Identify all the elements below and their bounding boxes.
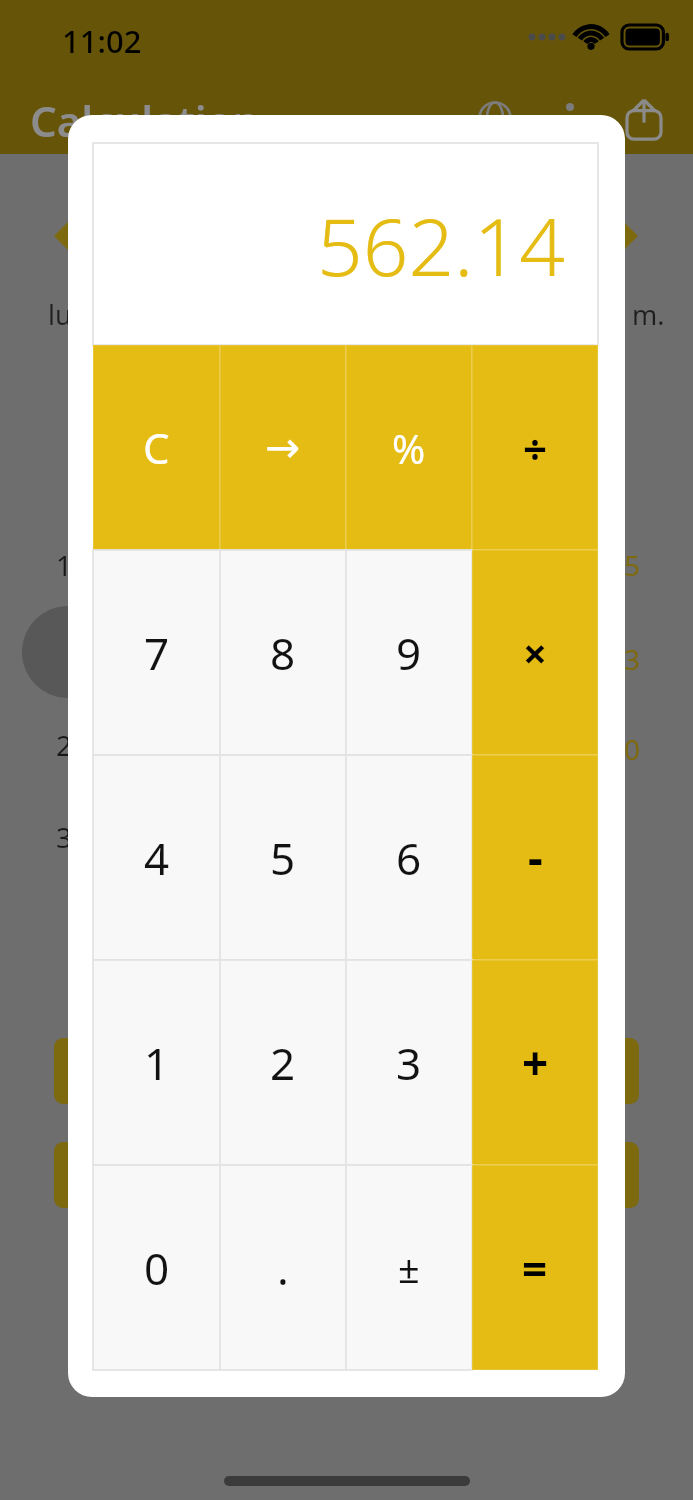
button[interactable]: 8 [220, 550, 346, 755]
button[interactable]: 3 [346, 960, 472, 1165]
button[interactable]: Plus [472, 960, 598, 1165]
staticText: 0 [624, 730, 641, 768]
staticText: 0 [144, 1238, 170, 1298]
button[interactable]: Multiply [472, 550, 598, 755]
staticText: 11:02 [62, 20, 142, 62]
button[interactable]: Percent [346, 345, 472, 550]
staticText: Calculation [30, 92, 260, 149]
button[interactable]: Share [614, 88, 674, 148]
button[interactable]: 2 [220, 960, 346, 1165]
staticText: 2 [270, 1033, 296, 1093]
staticText: % [392, 421, 426, 475]
staticText: 1 [144, 1033, 170, 1093]
button[interactable]: Info [546, 94, 594, 142]
staticText: 1 [56, 546, 73, 584]
staticText: m. [632, 296, 665, 333]
staticText: . [277, 1238, 289, 1298]
staticText: 3 [396, 1033, 422, 1093]
button[interactable]: 5 [220, 755, 346, 960]
button[interactable]: 4 [93, 755, 220, 960]
staticText: 3 [56, 818, 73, 856]
staticText: 7 [144, 623, 170, 683]
staticText: + [522, 1031, 549, 1094]
staticText: ÷ [523, 419, 548, 476]
staticText: 562.14 [93, 190, 565, 299]
button[interactable]: Minus [472, 755, 598, 960]
button[interactable]: 0 [93, 1165, 220, 1370]
staticText: 9 [396, 623, 422, 683]
staticText: 6 [396, 828, 422, 888]
button[interactable]: 1 [93, 960, 220, 1165]
staticText: lu [48, 296, 72, 333]
button[interactable]: Equals [472, 1165, 598, 1370]
staticText: 4 [144, 828, 170, 888]
staticText: 2 [56, 726, 73, 764]
button[interactable]: Backspace [220, 345, 346, 550]
staticText: ± [398, 1242, 420, 1294]
staticText: 3 [624, 640, 641, 678]
button[interactable]: 6 [346, 755, 472, 960]
staticText: 8 [270, 623, 296, 683]
button[interactable]: Toggle sign [346, 1165, 472, 1370]
button[interactable]: Divide [472, 345, 598, 550]
staticText: × [523, 624, 548, 681]
button[interactable]: Clear [93, 345, 220, 550]
staticText: 5 [270, 828, 296, 888]
staticText: → [265, 423, 301, 472]
button[interactable]: 9 [346, 550, 472, 755]
staticText: C [143, 419, 170, 476]
button[interactable]: Translate [468, 91, 522, 145]
staticText: 5 [624, 546, 641, 584]
staticText: - [528, 826, 543, 889]
button[interactable]: 7 [93, 550, 220, 755]
button[interactable]: Decimal point [220, 1165, 346, 1370]
staticText: = [522, 1238, 548, 1298]
